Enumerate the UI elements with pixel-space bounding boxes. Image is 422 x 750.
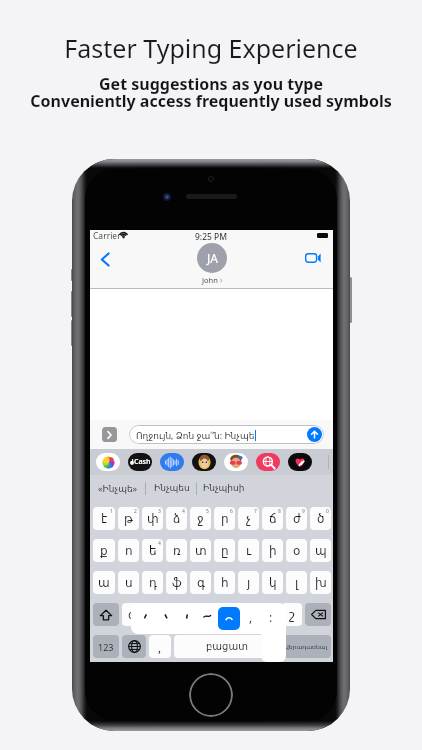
button[interactable]: ի (262, 539, 283, 562)
button[interactable]: ն (236, 603, 256, 626)
button[interactable]: ց (167, 603, 187, 626)
button[interactable]: վ (190, 603, 210, 626)
staticText: ք (100, 544, 108, 558)
staticText: 8 (278, 508, 281, 515)
staticText: ը (221, 544, 229, 558)
button[interactable]: բ (213, 603, 233, 626)
staticText: լ (295, 576, 299, 590)
button[interactable]: բացատ (174, 635, 279, 658)
button[interactable]: փ (142, 507, 163, 530)
button[interactable]: ս (118, 571, 139, 594)
staticText: վ (196, 608, 204, 622)
button[interactable]: հ (214, 571, 235, 594)
staticText: չ (246, 512, 251, 526)
button[interactable]: դ (142, 571, 163, 594)
staticText: 9 (302, 508, 305, 515)
button[interactable]: է (93, 507, 115, 530)
button[interactable]: Photos (96, 453, 120, 471)
button[interactable]: խ (310, 571, 331, 594)
button[interactable]: վերադառնալ (282, 635, 331, 658)
button[interactable]: ո (118, 539, 139, 562)
button[interactable]: մ (259, 603, 279, 626)
button[interactable]: «Ինչպե» (90, 475, 146, 501)
button[interactable]: ր (214, 507, 235, 530)
button[interactable]: 123 (93, 635, 119, 658)
button[interactable]: Apple Cash (128, 453, 152, 471)
staticText: 1 (110, 508, 113, 515)
button[interactable]: Memoji (192, 453, 216, 471)
staticText: ձ (173, 512, 181, 526)
staticText: ժ (293, 512, 301, 526)
staticText: Cash (134, 457, 151, 467)
staticText: գ (197, 576, 205, 590)
button[interactable]: Images (256, 453, 280, 471)
button[interactable]: ռ (166, 539, 187, 562)
button[interactable]: ձ (166, 507, 187, 530)
button[interactable]: գ (190, 571, 211, 594)
button[interactable]: Memoji 2 (224, 453, 248, 471)
staticText: , (249, 609, 253, 625)
button[interactable]: Ինչպիսի (197, 475, 250, 501)
staticText: Ողջույն, Ձոն ջա՞ն: Ինչպե (136, 429, 255, 441)
staticText: բացատ (206, 641, 248, 653)
button[interactable]: յ (238, 571, 259, 594)
staticText: ո (125, 544, 133, 558)
button[interactable]: Digital Touch (288, 453, 312, 471)
staticText: ւ (246, 544, 252, 558)
staticText: շ (289, 608, 295, 622)
staticText: ֆ (172, 576, 182, 590)
staticText: JA (207, 250, 218, 266)
button[interactable]: Ողջույն, Ձոն ջա՞ն: Ինչպե (129, 425, 324, 444)
button[interactable]: լ (286, 571, 307, 594)
button[interactable]: շ (282, 603, 302, 626)
staticText: John (202, 275, 218, 285)
button[interactable]: ճ (262, 507, 283, 530)
staticText: ր (221, 512, 229, 526)
button[interactable]: զ (122, 603, 141, 626)
staticText: խ (315, 576, 327, 590)
button[interactable]: ը (214, 539, 235, 562)
staticText: 3 (158, 508, 161, 515)
button[interactable]: ք (93, 539, 115, 562)
button[interactable]: ե (142, 539, 163, 562)
button[interactable]: Switch language (122, 635, 146, 658)
staticText: ե (149, 544, 157, 558)
staticText: ծ (317, 512, 325, 526)
staticText: Ինչպիսի (203, 483, 245, 493)
staticText: 6 (230, 508, 233, 515)
button[interactable]: պ (310, 539, 331, 562)
staticText: դ (149, 576, 157, 590)
staticText: բ (219, 608, 227, 622)
staticText: տ (195, 544, 207, 558)
button[interactable]: Apps (102, 427, 117, 442)
staticText: ի (269, 544, 277, 558)
button[interactable]: Ինչպես (146, 475, 197, 501)
button[interactable]: ա (93, 571, 115, 594)
button[interactable]: Send (307, 427, 322, 442)
staticText: ճ (269, 512, 277, 526)
staticText: է (101, 512, 108, 526)
staticText: հ (221, 576, 229, 590)
staticText: կ (269, 576, 277, 590)
button[interactable]: Backspace (305, 603, 331, 626)
button[interactable]: , (149, 635, 171, 658)
button[interactable]: թ (118, 507, 139, 530)
staticText: Carrier (93, 230, 121, 242)
staticText: յ (247, 576, 251, 590)
button[interactable]: ջ (190, 507, 211, 530)
staticText: 4 (158, 540, 161, 547)
button[interactable]: տ (190, 539, 211, 562)
button[interactable]: չ (238, 507, 259, 530)
button[interactable]: ւ (238, 539, 259, 562)
button[interactable]: Audio message (160, 453, 184, 471)
button[interactable]: կ (262, 571, 283, 594)
button[interactable]: օ (286, 539, 307, 562)
button[interactable]: ղ (144, 603, 164, 626)
button[interactable]: ֆ (166, 571, 187, 594)
button[interactable]: Shift (93, 603, 119, 626)
button[interactable]: ժ (286, 507, 307, 530)
button[interactable]: Back (94, 248, 116, 270)
button[interactable]: Video call (301, 246, 325, 270)
button[interactable]: ծ (310, 507, 331, 530)
